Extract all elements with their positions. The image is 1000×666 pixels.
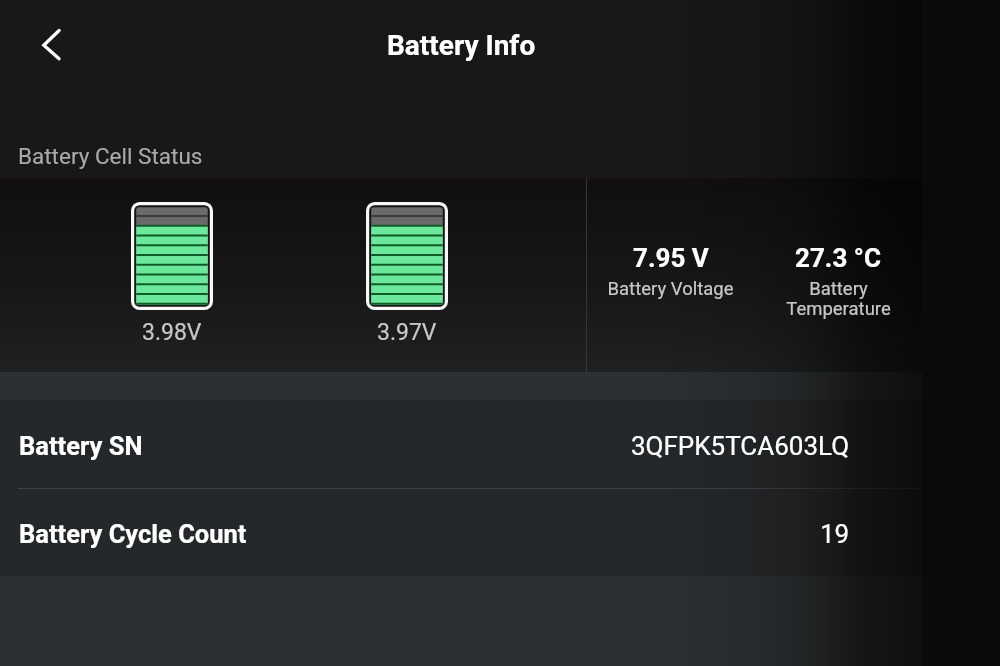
staticText: 3QFPK5TCA603LQ [631,431,850,461]
staticText: Battery Info [387,29,536,62]
staticText: 3.98V [142,319,202,346]
button[interactable]: Back [21,15,81,75]
staticText: 7.95 V [633,243,709,273]
staticText: Battery Cell Status [18,143,203,169]
button[interactable]: Battery Cycle Count [0,488,922,576]
button[interactable]: Battery SN [0,400,922,488]
staticText: Battery Temperature [786,278,891,320]
staticText: 3.97V [377,319,437,346]
staticText: 27.3 °C [795,243,881,273]
staticText: Battery Voltage [607,278,734,300]
staticText: 19 [820,519,850,549]
staticText: Battery Cycle Count [19,519,247,549]
staticText: Battery SN [19,431,143,461]
